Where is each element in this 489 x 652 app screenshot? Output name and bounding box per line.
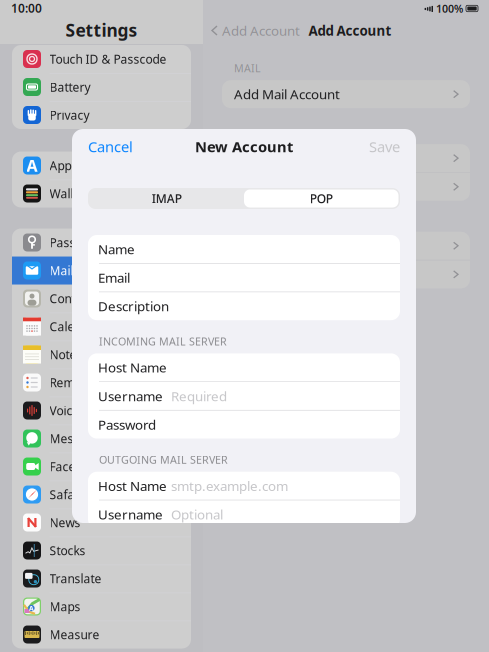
staticText: Add Account bbox=[222, 22, 300, 39]
staticText: A bbox=[26, 155, 37, 176]
button[interactable]: Passwords bbox=[12, 228, 191, 256]
button[interactable]: FaceTime bbox=[12, 452, 191, 480]
staticText: POP bbox=[310, 190, 333, 206]
button[interactable]: Touch ID & Passcode bbox=[12, 45, 191, 73]
button[interactable]: Safari bbox=[12, 480, 191, 508]
staticText: App Store bbox=[49, 157, 104, 173]
staticText: Save bbox=[369, 137, 400, 156]
staticText: Battery bbox=[49, 79, 90, 95]
staticText: A bbox=[29, 604, 34, 613]
button[interactable] bbox=[222, 173, 470, 201]
staticText: Host Name bbox=[98, 477, 167, 495]
staticText: Add Account bbox=[308, 22, 391, 39]
staticText: Safari bbox=[49, 486, 82, 502]
staticText: Translate bbox=[49, 570, 101, 586]
staticText: Contacts bbox=[49, 290, 98, 306]
button[interactable]: Contacts bbox=[12, 284, 191, 312]
button[interactable]: POP bbox=[244, 189, 398, 207]
staticText: Measure bbox=[49, 626, 99, 642]
button[interactable]: Stocks bbox=[12, 536, 191, 564]
button[interactable]: Reminders bbox=[12, 368, 191, 396]
button[interactable]: Save bbox=[353, 129, 416, 164]
staticText: OUTGOING MAIL SERVER bbox=[99, 453, 228, 467]
button[interactable]: Measure bbox=[12, 620, 191, 648]
staticText: IMAP bbox=[152, 190, 182, 206]
button[interactable]: Mail bbox=[12, 256, 191, 284]
staticText: MAIL bbox=[234, 61, 261, 75]
staticText: Touch ID & Passcode bbox=[49, 51, 166, 67]
button[interactable]: Battery bbox=[12, 73, 191, 101]
button[interactable]: News bbox=[12, 508, 191, 536]
staticText: smtp.example.com bbox=[171, 477, 288, 495]
staticText: Notes bbox=[49, 346, 82, 362]
button[interactable]: Privacy bbox=[12, 101, 191, 129]
button[interactable]: Calendar bbox=[12, 312, 191, 340]
staticText: Username bbox=[98, 387, 163, 405]
staticText: Reminders bbox=[49, 374, 109, 390]
staticText: Messages bbox=[49, 430, 106, 446]
staticText: Settings bbox=[65, 18, 137, 41]
staticText: Username bbox=[98, 505, 163, 523]
staticText: Required bbox=[171, 387, 227, 405]
button[interactable]: Messages bbox=[12, 424, 191, 452]
staticText: News bbox=[49, 514, 80, 530]
button[interactable] bbox=[222, 260, 470, 288]
staticText: New Account bbox=[195, 137, 293, 156]
button[interactable] bbox=[222, 232, 470, 260]
staticText: 10:00 bbox=[11, 0, 42, 16]
staticText: 100% bbox=[436, 1, 463, 16]
button[interactable]: Add Mail Account bbox=[222, 80, 470, 108]
button[interactable]: Voice Memos bbox=[12, 396, 191, 424]
button[interactable]: A bbox=[12, 592, 191, 620]
staticText: Description bbox=[98, 297, 169, 315]
staticText: Mail bbox=[49, 262, 73, 278]
staticText: Password bbox=[98, 416, 156, 433]
staticText: Name bbox=[98, 240, 135, 258]
staticText: INCOMING MAIL SERVER bbox=[99, 334, 227, 348]
staticText: Maps bbox=[49, 598, 80, 614]
staticText: Passwords bbox=[49, 234, 109, 250]
button[interactable]: Cancel bbox=[72, 129, 149, 164]
staticText: FaceTime bbox=[49, 458, 103, 474]
staticText: Stocks bbox=[49, 542, 85, 558]
staticText: Privacy bbox=[49, 107, 89, 123]
button[interactable] bbox=[222, 144, 470, 172]
staticText: Cancel bbox=[88, 137, 133, 156]
staticText: Wallet bbox=[49, 185, 84, 201]
staticText: Calendar bbox=[49, 318, 100, 334]
staticText: Add Mail Account bbox=[234, 85, 340, 103]
button[interactable]: IMAP bbox=[89, 189, 244, 207]
staticText: Host Name bbox=[98, 358, 167, 376]
button[interactable]: Translate bbox=[12, 564, 191, 592]
button[interactable]: Add Account bbox=[203, 17, 308, 44]
button[interactable]: Wallet bbox=[12, 179, 191, 207]
staticText: Email bbox=[98, 269, 130, 286]
staticText: Voice Memos bbox=[49, 402, 124, 418]
button[interactable]: Notes bbox=[12, 340, 191, 368]
staticText: Optional bbox=[171, 505, 223, 523]
button[interactable]: A bbox=[12, 151, 191, 179]
